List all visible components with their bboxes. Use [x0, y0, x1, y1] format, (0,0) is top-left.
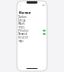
staticText: Ideas: [18, 19, 25, 22]
button[interactable]: Work: [17, 22, 47, 25]
button[interactable]: Shared: [17, 32, 47, 36]
button[interactable]: Recent: [17, 36, 47, 39]
staticText: Tags: [18, 39, 23, 42]
button[interactable]: Todos: [17, 15, 47, 19]
staticText: Todos: [18, 15, 26, 19]
button[interactable]: Tags: [17, 39, 47, 42]
staticText: Recent: [18, 36, 28, 39]
button[interactable]: Photos: [17, 29, 47, 32]
staticText: Shared: [18, 32, 27, 36]
staticText: Work: [18, 22, 24, 25]
staticText: Trips: [18, 25, 24, 29]
button[interactable]: Ideas: [17, 19, 47, 22]
button[interactable]: Trips: [17, 25, 47, 29]
staticText: 9:41: [19, 4, 22, 6]
staticText: Home: [19, 10, 31, 15]
staticText: Photos: [18, 29, 28, 32]
